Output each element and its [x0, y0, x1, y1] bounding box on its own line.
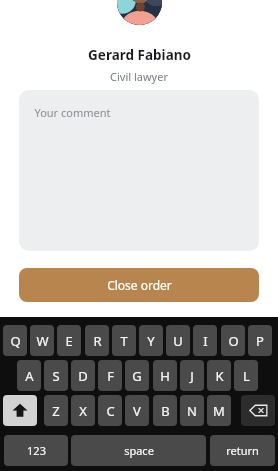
button[interactable]: O [221, 325, 245, 356]
button[interactable]: M [207, 395, 231, 426]
staticText: G [132, 367, 142, 385]
button[interactable]: A [17, 360, 41, 391]
button[interactable]: B [153, 395, 177, 426]
staticText: L [243, 367, 250, 385]
staticText: I [203, 332, 208, 350]
staticText: Close order [107, 277, 172, 293]
staticText: H [160, 367, 170, 385]
staticText: A [25, 367, 34, 385]
button[interactable]: E [57, 325, 81, 356]
staticText: O [228, 332, 239, 350]
staticText: C [106, 402, 115, 420]
staticText: return [226, 443, 259, 458]
staticText: N [187, 402, 197, 420]
button[interactable]: W [30, 325, 54, 356]
staticText: M [213, 402, 225, 420]
button[interactable]: T [112, 325, 136, 356]
staticText: Gerard Fabiano [88, 46, 191, 64]
staticText: Y [147, 332, 155, 350]
button[interactable]: Your comment [19, 90, 259, 251]
button[interactable]: H [153, 360, 177, 391]
staticText: J [190, 367, 194, 385]
staticText: Z [52, 402, 60, 420]
button[interactable]: Y [139, 325, 163, 356]
button[interactable]: Q [3, 325, 27, 356]
button[interactable]: I [193, 325, 217, 356]
staticText: S [52, 367, 60, 385]
staticText: F [107, 367, 114, 385]
button[interactable]: L [234, 360, 258, 391]
staticText: Civil lawyer [110, 69, 168, 84]
button[interactable]: space [71, 435, 206, 466]
staticText: T [120, 332, 128, 350]
button[interactable]: S [44, 360, 68, 391]
button[interactable]: 123 [4, 435, 68, 466]
staticText: W [36, 332, 49, 350]
staticText: R [93, 332, 102, 350]
button[interactable]: J [180, 360, 204, 391]
button[interactable]: K [207, 360, 231, 391]
staticText: 123 [27, 443, 46, 458]
button[interactable]: Shift [3, 395, 37, 426]
button[interactable]: Close order [19, 268, 259, 302]
staticText: D [78, 367, 88, 385]
button[interactable]: V [125, 395, 149, 426]
button[interactable]: G [125, 360, 149, 391]
staticText: space [124, 443, 154, 458]
button[interactable]: C [98, 395, 122, 426]
button[interactable]: return [210, 435, 275, 466]
button[interactable]: P [248, 325, 272, 356]
button[interactable]: N [180, 395, 204, 426]
button[interactable]: D [71, 360, 95, 391]
button[interactable]: R [85, 325, 109, 356]
button[interactable]: U [166, 325, 190, 356]
staticText: B [161, 402, 170, 420]
staticText: E [65, 332, 73, 350]
button[interactable]: Z [44, 395, 68, 426]
button[interactable]: X [71, 395, 95, 426]
staticText: X [79, 402, 87, 420]
button[interactable]: Backspace [241, 395, 275, 426]
staticText: P [256, 332, 264, 350]
staticText: Q [10, 332, 21, 350]
button[interactable]: F [98, 360, 122, 391]
staticText: V [133, 402, 141, 420]
staticText: Your comment [34, 105, 111, 120]
staticText: U [173, 332, 183, 350]
staticText: K [215, 367, 224, 385]
